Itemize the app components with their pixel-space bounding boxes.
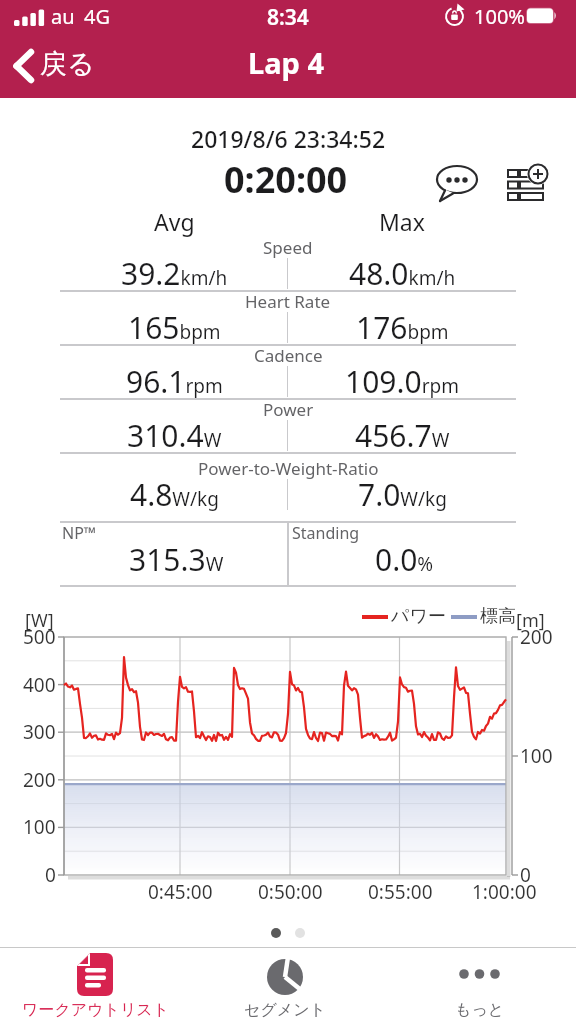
staticText: Power (263, 398, 314, 421)
staticText: 310.4W (127, 415, 222, 456)
button[interactable]: もっと (410, 948, 550, 1024)
staticText: 7.0W/kg (358, 474, 447, 515)
staticText: ワークアウトリスト (22, 1000, 169, 1020)
staticText: 0.0% (375, 539, 434, 580)
staticText: 8:34 (267, 3, 309, 32)
staticText: Lap 4 (248, 43, 325, 82)
staticText: Heart Rate (245, 290, 331, 313)
staticText: セグメント (244, 1000, 326, 1020)
staticText: もっと (455, 1000, 505, 1020)
staticText: 100% (474, 3, 525, 30)
staticText: 100 (23, 814, 56, 840)
staticText: 400 (23, 672, 56, 698)
button[interactable] (503, 158, 555, 206)
staticText: 39.2km/h (121, 253, 228, 294)
staticText: 2019/8/6 23:34:52 (191, 123, 386, 154)
staticText: 0:20:00 (224, 155, 348, 204)
staticText: 戻る (40, 47, 95, 81)
staticText: 456.7W (355, 415, 450, 456)
staticText: 48.0km/h (349, 253, 456, 294)
staticText: Power-to-Weight-Ratio (198, 457, 379, 480)
staticText: 4.8W/kg (130, 474, 219, 515)
staticText: 500 (23, 624, 56, 650)
staticText: Max (379, 206, 425, 237)
staticText: 0:45:00 (148, 879, 213, 905)
button[interactable]: ワークアウトリスト (15, 948, 175, 1024)
staticText: 0:50:00 (258, 879, 323, 905)
staticText: [W] (25, 608, 54, 633)
staticText: 165bpm (128, 307, 221, 348)
staticText: 1:00:00 (472, 879, 537, 905)
staticText: 0 (45, 862, 56, 888)
staticText: 96.1rpm (126, 361, 223, 402)
staticText: Standing (292, 522, 360, 544)
staticText: 0:55:00 (368, 879, 433, 905)
staticText: 200 (23, 767, 56, 793)
staticText: 0 (520, 862, 531, 888)
staticText: パワー (391, 605, 446, 628)
staticText: 300 (23, 719, 56, 745)
staticText: Avg (154, 206, 195, 237)
button[interactable]: セグメント (215, 948, 355, 1024)
staticText: Speed (263, 236, 313, 259)
staticText: 標高 (480, 605, 516, 628)
staticText: 100 (520, 743, 553, 769)
staticText: 109.0rpm (345, 361, 459, 402)
staticText: Cadence (254, 344, 323, 367)
staticText: 176bpm (356, 307, 449, 348)
button[interactable]: 戻る (10, 44, 120, 90)
button[interactable] (430, 160, 484, 208)
staticText: 4G (84, 3, 110, 30)
staticText: au (51, 3, 75, 30)
staticText: NP™ (62, 522, 97, 544)
staticText: [m] (516, 608, 545, 633)
staticText: 200 (520, 624, 553, 650)
staticText: 315.3W (129, 539, 224, 580)
